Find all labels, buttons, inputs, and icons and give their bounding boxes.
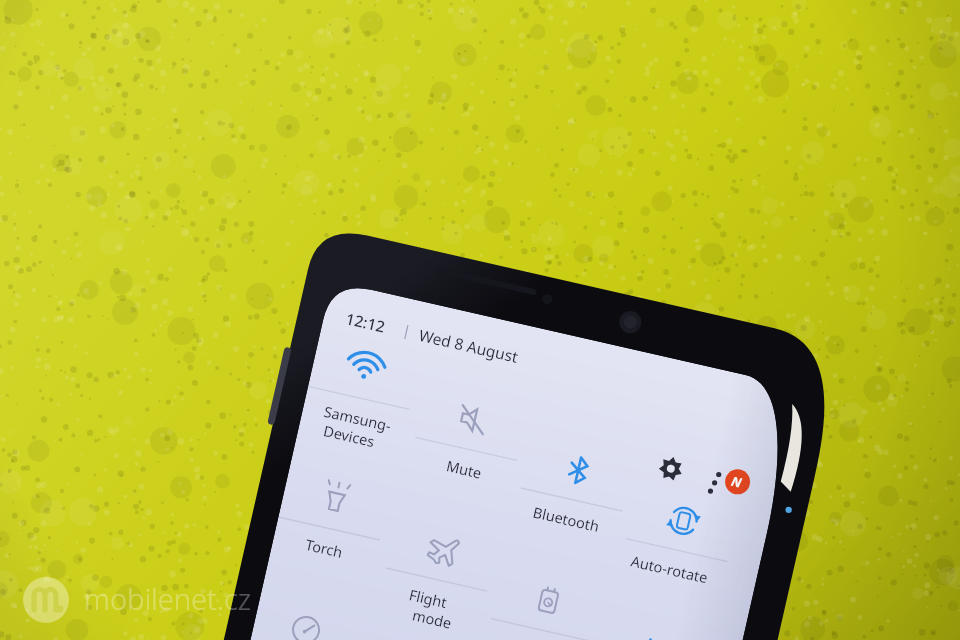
button[interactable]: Samsung phone showing quick settings pan… xyxy=(0,0,960,640)
